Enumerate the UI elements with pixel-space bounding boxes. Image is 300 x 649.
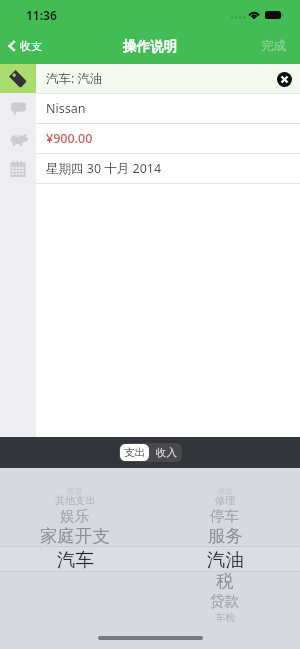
staticText: ¥900.00 [46, 130, 93, 147]
button[interactable]: 修理 [150, 489, 300, 511]
staticText: 娱乐 [60, 507, 90, 525]
staticText: 服务 [208, 525, 243, 547]
staticText: 收入 [156, 446, 177, 459]
button[interactable]: ¥900.00 [0, 124, 300, 153]
button[interactable]: 汽车: 汽油 [0, 64, 300, 93]
staticText: 教育 [67, 486, 83, 496]
button[interactable]: 星期四 30 十月 2014 [0, 154, 300, 183]
button[interactable]: 收支 [0, 33, 52, 59]
button[interactable]: 保险 [150, 480, 300, 502]
staticText: 星期四 30 十月 2014 [46, 160, 162, 177]
staticText: 车检 [215, 611, 236, 624]
button[interactable]: Clear text [274, 69, 294, 89]
button[interactable]: 车检 [150, 606, 300, 628]
staticText: 收支 [20, 39, 42, 53]
staticText: 其他支出 [55, 494, 96, 507]
staticText: 支出 [124, 446, 145, 459]
button[interactable]: 其他支出 [0, 489, 150, 511]
staticText: 家庭开支 [40, 525, 110, 547]
staticText: 税 [216, 570, 234, 592]
button[interactable]: 税 [150, 570, 300, 592]
staticText: 贷款 [210, 592, 240, 610]
staticText: 停车 [210, 507, 240, 525]
staticText: 修理 [215, 494, 236, 507]
button[interactable]: 贷款 [150, 590, 300, 612]
staticText: 汽油 [207, 548, 244, 570]
staticText: 11:36 [26, 7, 57, 23]
staticText: 操作说明 [123, 38, 177, 55]
staticText: 保险 [217, 486, 233, 496]
button[interactable]: Nissan [0, 94, 300, 123]
button[interactable]: 衣服 [0, 478, 150, 500]
button[interactable]: 教育 [0, 480, 150, 502]
button[interactable]: 娱乐 [0, 505, 150, 527]
button[interactable]: 汽车 [0, 548, 150, 570]
staticText: 衣服 [67, 484, 83, 494]
staticText: Nissan [46, 100, 86, 117]
button[interactable]: 完成 [247, 26, 300, 66]
button[interactable]: 家庭开支 [0, 525, 150, 547]
button[interactable]: 汽油 [150, 548, 300, 570]
button[interactable]: 收入 [150, 443, 182, 462]
button[interactable]: 支出 [120, 444, 149, 461]
button[interactable]: 停车 [150, 505, 300, 527]
staticText: 汽车 [57, 548, 94, 570]
staticText: 汽车: 汽油 [46, 70, 103, 87]
button[interactable]: 服务 [150, 525, 300, 547]
